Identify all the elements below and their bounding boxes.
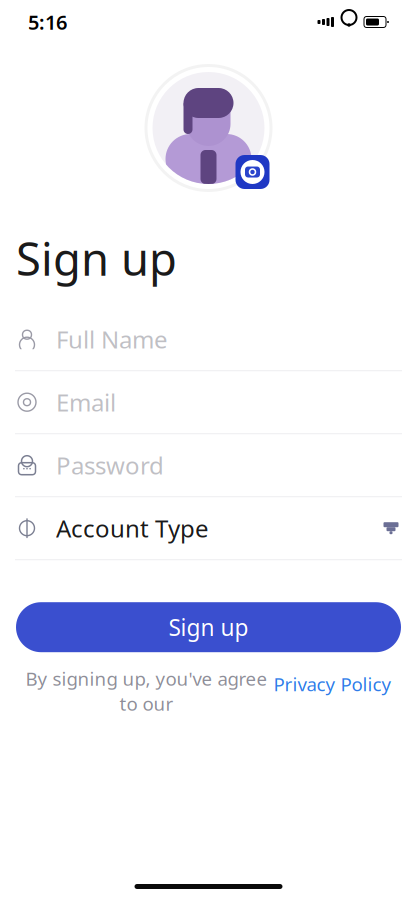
staticText: Privacy Policy bbox=[273, 672, 391, 696]
button[interactable]: Privacy Policy bbox=[267, 672, 391, 710]
staticText: Sign up bbox=[16, 228, 177, 288]
staticText: By signing up, you've agree bbox=[25, 666, 267, 691]
staticText: Sign up bbox=[168, 612, 248, 642]
staticText: 5:16 bbox=[28, 9, 67, 35]
staticText: Account Type bbox=[56, 512, 209, 544]
button[interactable]: Full Name bbox=[0, 308, 417, 370]
button[interactable]: Account Type bbox=[0, 497, 417, 559]
staticText: Full Name bbox=[56, 323, 168, 355]
button[interactable]: Change profile photo bbox=[142, 62, 274, 194]
button[interactable]: Email bbox=[0, 371, 417, 433]
staticText: Email bbox=[56, 386, 116, 418]
button[interactable]: Sign up bbox=[16, 602, 401, 652]
button[interactable]: Password bbox=[0, 434, 417, 496]
staticText: Password bbox=[56, 449, 164, 481]
staticText: to our bbox=[119, 691, 173, 716]
